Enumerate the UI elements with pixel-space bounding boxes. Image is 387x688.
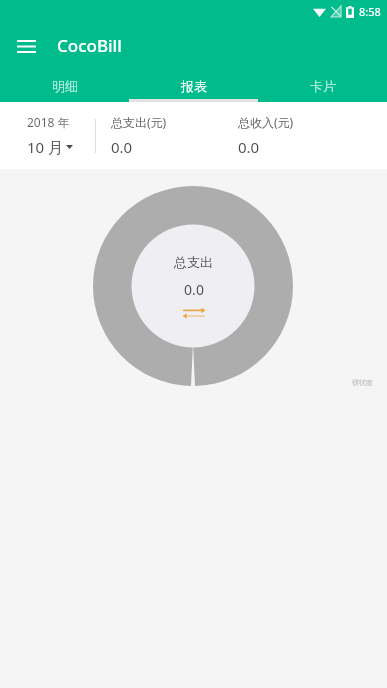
- staticText: 2018 年: [27, 114, 70, 130]
- staticText: 明细: [52, 78, 78, 94]
- staticText: 0.0: [238, 137, 260, 157]
- staticText: 总收入(元): [238, 114, 294, 130]
- staticText: 10 月: [27, 137, 64, 157]
- button[interactable]: 报表: [129, 69, 258, 102]
- button[interactable]: 饼状图: [352, 378, 373, 387]
- button[interactable]: 卡片: [258, 69, 387, 102]
- staticText: 报表: [181, 78, 207, 94]
- staticText: 0.0: [111, 137, 133, 157]
- button[interactable]: Expense pie chart: [93, 186, 293, 386]
- staticText: 总支出: [174, 254, 213, 270]
- button[interactable]: 明细: [0, 69, 129, 102]
- staticText: 8:58: [359, 4, 381, 19]
- button[interactable]: 2018 年: [0, 102, 95, 169]
- staticText: CocoBill: [57, 34, 122, 57]
- button[interactable]: Open navigation menu: [7, 27, 45, 65]
- staticText: 卡片: [310, 78, 336, 94]
- button[interactable]: Switch between expense and income: [182, 306, 206, 319]
- staticText: 0.0: [184, 280, 204, 299]
- staticText: 总支出(元): [111, 114, 167, 130]
